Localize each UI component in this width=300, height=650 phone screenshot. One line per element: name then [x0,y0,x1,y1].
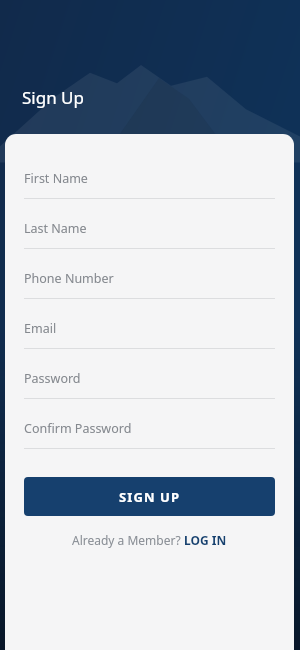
button[interactable]: Password [5,358,294,408]
button[interactable]: SIGN UP [24,477,275,516]
staticText: Confirm Password [24,420,132,437]
staticText: Phone Number [24,270,114,287]
button[interactable]: Last Name [5,208,294,258]
staticText: Last Name [24,220,87,237]
button[interactable]: Email [5,308,294,358]
staticText: LOG IN [184,532,227,548]
button[interactable]: Phone Number [5,258,294,308]
staticText: Sign Up [22,86,84,109]
button[interactable]: First Name [5,158,294,208]
staticText: Email [24,320,57,337]
staticText: Already a Member? [72,532,184,548]
staticText: Password [24,370,81,387]
button[interactable]: Already a Member? [5,529,294,551]
button[interactable]: Confirm Password [5,408,294,458]
staticText: SIGN UP [119,488,181,506]
staticText: First Name [24,170,88,187]
